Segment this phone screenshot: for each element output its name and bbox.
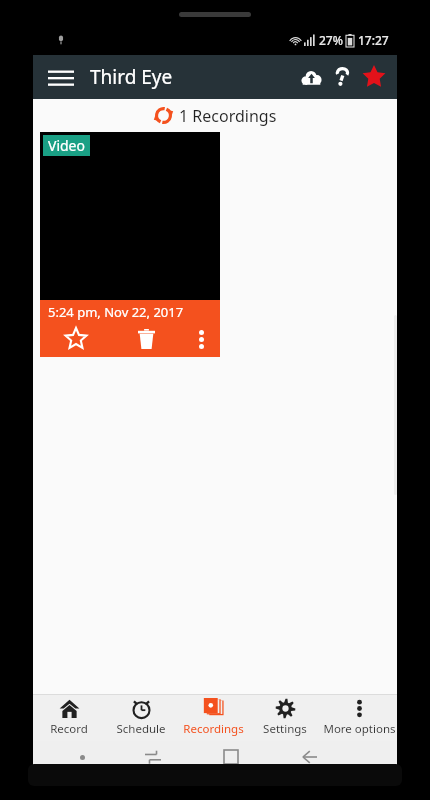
staticText: Record bbox=[50, 721, 88, 737]
button[interactable]: More options for this recording bbox=[182, 321, 220, 357]
button[interactable]: Back bbox=[270, 741, 348, 773]
staticText: 27% bbox=[319, 32, 343, 48]
staticText: 5:24 pm, Nov 22, 2017 bbox=[48, 303, 184, 321]
staticText: More options bbox=[323, 721, 396, 737]
button[interactable]: Home bbox=[192, 741, 270, 773]
button[interactable]: Mark as favourite bbox=[40, 321, 111, 357]
staticText: 1 Recordings bbox=[179, 105, 277, 127]
button[interactable]: Record bbox=[33, 694, 105, 741]
staticText: Third Eye bbox=[90, 64, 173, 90]
staticText: Video bbox=[48, 136, 85, 155]
button[interactable]: Recent apps bbox=[114, 741, 192, 773]
staticText: Recordings bbox=[183, 721, 244, 737]
button[interactable]: Cloud upload bbox=[295, 61, 327, 93]
button[interactable]: Help bbox=[327, 62, 357, 92]
button[interactable]: Schedule bbox=[105, 694, 177, 741]
staticText: Settings bbox=[263, 721, 307, 737]
button[interactable]: Delete recording bbox=[111, 321, 182, 357]
button[interactable]: Open navigation menu bbox=[41, 57, 81, 97]
staticText: Schedule bbox=[116, 721, 166, 737]
button[interactable]: Recordings bbox=[177, 694, 249, 741]
button[interactable]: Favorite bbox=[357, 60, 391, 94]
button[interactable]: Video bbox=[40, 132, 220, 357]
button[interactable]: Settings bbox=[249, 694, 321, 741]
staticText: 17:27 bbox=[358, 32, 389, 48]
button[interactable]: More options bbox=[321, 694, 397, 741]
